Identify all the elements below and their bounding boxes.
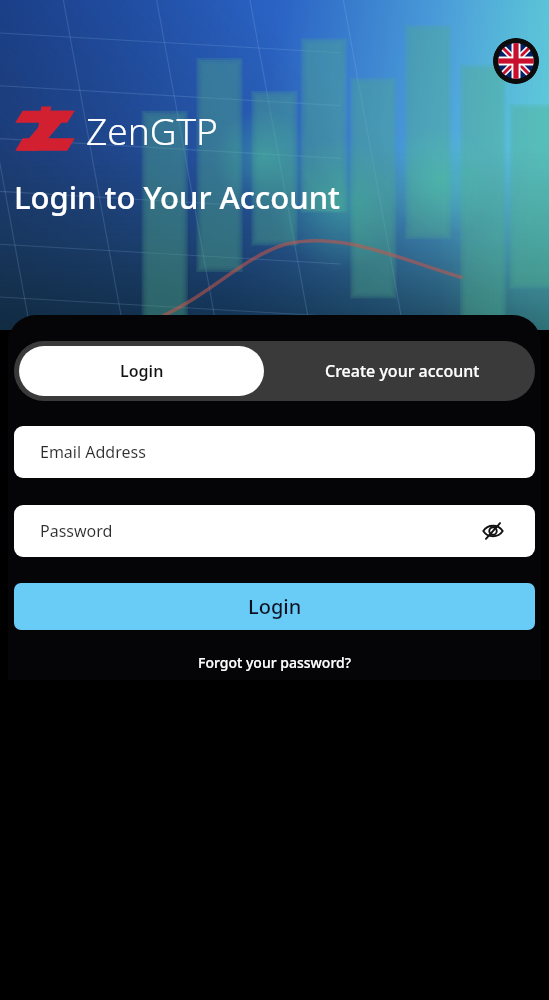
button[interactable]: Create your account: [269, 341, 535, 401]
staticText: Login to Your Account: [14, 176, 340, 218]
button[interactable]: Show password: [477, 515, 509, 547]
staticText: Email Address: [40, 441, 146, 463]
button[interactable]: Forgot your password?: [190, 645, 359, 680]
staticText: Login: [248, 593, 302, 620]
staticText: Login: [120, 360, 164, 382]
button[interactable]: Login: [14, 583, 535, 630]
button[interactable]: Language: English: [493, 38, 539, 84]
staticText: Create your account: [325, 360, 480, 382]
staticText: Password: [40, 520, 113, 542]
staticText: ZenGTP: [86, 105, 218, 155]
button[interactable]: Email Address: [14, 426, 535, 478]
staticText: Forgot your password?: [198, 653, 351, 672]
button[interactable]: Login: [19, 346, 264, 396]
button[interactable]: Password: [14, 505, 535, 557]
